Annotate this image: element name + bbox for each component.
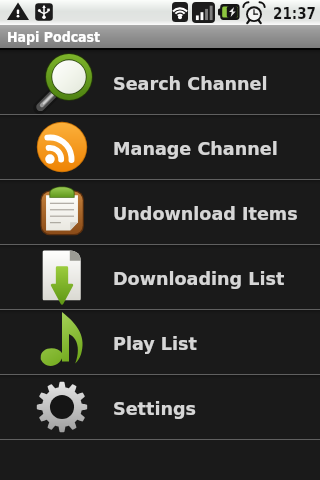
staticText: Undownload Items <box>113 204 298 224</box>
staticText: Play List <box>113 334 197 354</box>
button[interactable]: Settings <box>0 375 320 439</box>
button[interactable]: Downloading List <box>0 245 320 309</box>
button[interactable]: Manage Channel <box>0 115 320 179</box>
staticText: Hapi Podcast <box>7 29 101 45</box>
button[interactable]: Undownload Items <box>0 180 320 244</box>
staticText: Manage Channel <box>113 139 278 159</box>
button[interactable]: Search Channel <box>0 50 320 114</box>
staticText: 21:37 <box>273 5 316 22</box>
staticText: Search Channel <box>113 74 268 94</box>
staticText: Downloading List <box>113 269 285 289</box>
staticText: Settings <box>113 399 197 419</box>
button[interactable]: Play List <box>0 310 320 374</box>
